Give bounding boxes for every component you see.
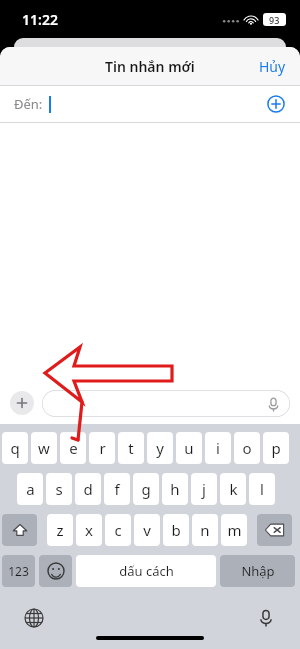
button[interactable]: x [76,514,102,546]
button[interactable]: a [17,473,43,505]
staticText: s [55,479,63,499]
staticText: t [128,438,134,458]
staticText: l [260,479,264,499]
staticText: q [10,438,20,458]
staticText: j [202,479,206,499]
staticText: b [171,520,181,540]
staticText: p [271,438,281,458]
staticText: v [143,520,151,540]
button[interactable] [39,555,72,587]
staticText: y [156,438,164,458]
staticText: m [227,520,242,540]
staticText: a [26,479,35,499]
staticText: u [184,438,194,458]
button[interactable]: p [263,432,289,464]
button[interactable]: Nhập [220,555,295,587]
staticText: z [56,520,64,540]
button[interactable]: e [60,432,86,464]
button[interactable]: u [176,432,202,464]
staticText: dấu cách [119,562,174,580]
button[interactable]: Add contact [263,91,289,117]
staticText: Hủy [259,57,286,76]
button[interactable]: d [75,473,101,505]
button[interactable]: t [118,432,144,464]
button[interactable]: 123 [2,555,35,587]
staticText: x [85,520,93,540]
staticText: Nhập [241,562,275,580]
button[interactable]: q [2,432,28,464]
button[interactable]: o [234,432,260,464]
button[interactable]: Change keyboard [21,605,47,631]
staticText: Đến: [14,95,43,113]
button[interactable]: Dictate [42,390,290,417]
button[interactable]: b [163,514,189,546]
staticText: f [114,479,120,499]
button[interactable]: c [105,514,131,546]
button[interactable]: g [133,473,159,505]
staticText: w [38,438,50,458]
button[interactable]: Hủy [245,49,300,84]
button[interactable]: Voice input [253,605,279,631]
staticText: h [170,479,180,499]
button[interactable]: i [205,432,231,464]
button[interactable]: h [162,473,188,505]
button[interactable]: f [104,473,130,505]
staticText: i [216,438,220,458]
button[interactable] [257,514,292,546]
button[interactable]: Dictate [265,396,281,412]
staticText: g [141,479,151,499]
staticText: e [69,438,78,458]
button[interactable]: More options [10,391,34,415]
staticText: n [200,520,210,540]
staticText: 11:22 [22,10,58,29]
button[interactable]: dấu cách [76,555,216,587]
button[interactable]: Đến: [0,86,300,122]
staticText: r [99,438,106,458]
button[interactable]: r [89,432,115,464]
button[interactable]: z [47,514,73,546]
staticText: c [114,520,122,540]
button[interactable]: l [249,473,275,505]
button[interactable]: k [220,473,246,505]
staticText: o [242,438,252,458]
staticText: d [83,479,93,499]
button[interactable]: m [221,514,247,546]
staticText: Tin nhắn mới [105,57,195,76]
staticText: 123 [8,563,29,579]
staticText: k [229,479,238,499]
button[interactable]: n [192,514,218,546]
button[interactable]: w [31,432,57,464]
button[interactable]: v [134,514,160,546]
button[interactable]: s [46,473,72,505]
staticText: 93 [269,14,280,26]
button[interactable] [2,514,37,546]
button[interactable]: y [147,432,173,464]
button[interactable]: j [191,473,217,505]
